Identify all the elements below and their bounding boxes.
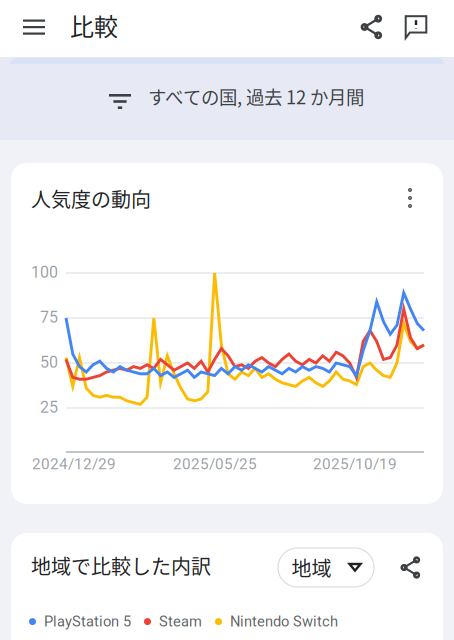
staticText: 2025/05/25 <box>173 455 257 473</box>
button[interactable]: 共有 <box>390 548 430 587</box>
staticText: Steam <box>159 613 202 630</box>
button[interactable]: フィードバックを送信 <box>393 4 439 50</box>
button[interactable]: その他のオプション <box>392 180 428 216</box>
staticText: PlayStation 5 <box>44 613 131 630</box>
staticText: すべての国, 過去 12 か月間 <box>148 83 364 110</box>
button[interactable]: 地域 <box>278 548 374 587</box>
staticText: 2024/12/29 <box>32 455 116 473</box>
staticText: 2025/10/19 <box>313 455 397 473</box>
staticText: 75 <box>40 308 58 327</box>
staticText: 地域で比較した内訳 <box>31 551 211 580</box>
button[interactable]: すべての国, 過去 12 か月間 <box>0 56 454 140</box>
button[interactable]: 共有 <box>348 4 394 50</box>
staticText: 地域 <box>291 553 331 582</box>
button[interactable]: メニュー <box>11 4 57 50</box>
staticText: 100 <box>31 263 58 282</box>
staticText: 比較 <box>70 8 118 43</box>
staticText: 人気度の動向 <box>31 184 151 213</box>
staticText: 25 <box>40 398 58 417</box>
staticText: 50 <box>40 353 58 372</box>
staticText: Nintendo Switch <box>230 613 338 630</box>
